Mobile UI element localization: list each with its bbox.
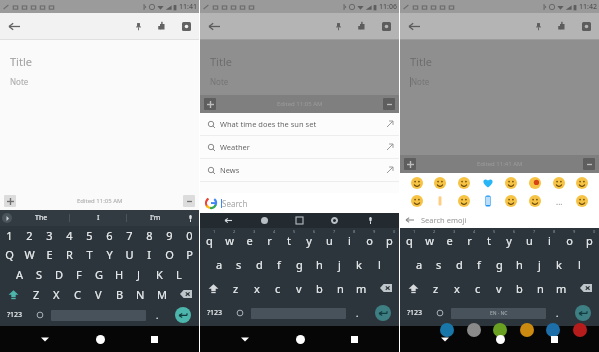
button[interactable]: Emoji — [457, 194, 471, 208]
button[interactable]: Emoji — [433, 194, 447, 208]
button[interactable]: 7 — [519, 228, 539, 252]
button[interactable]: 5 — [479, 228, 499, 252]
button[interactable]: x — [446, 276, 467, 300]
button[interactable]: Enter — [167, 304, 199, 326]
button[interactable]: Back — [436, 330, 454, 348]
button[interactable]: B — [109, 284, 130, 304]
button[interactable]: l — [369, 252, 389, 276]
button[interactable]: 9 — [359, 228, 379, 252]
button[interactable]: Back — [5, 17, 23, 35]
button[interactable]: Archive — [177, 17, 195, 35]
button[interactable]: Emoji — [410, 194, 424, 208]
button[interactable]: z — [426, 276, 446, 300]
button[interactable]: Recents — [545, 330, 563, 348]
button[interactable]: 8 — [539, 228, 559, 252]
button[interactable]: 3 — [239, 228, 259, 252]
button[interactable]: 3 — [39, 226, 59, 244]
button[interactable]: 8 — [339, 228, 359, 252]
button[interactable]: More options — [583, 158, 595, 170]
button[interactable]: 4 — [459, 228, 479, 252]
button[interactable]: D — [49, 264, 69, 284]
button[interactable]: j — [329, 252, 349, 276]
button[interactable]: g — [289, 252, 309, 276]
button[interactable]: 6 — [499, 228, 519, 252]
button[interactable]: 1 — [200, 228, 219, 252]
button[interactable]: 1 — [0, 226, 19, 244]
button[interactable]: Back — [236, 330, 254, 348]
button[interactable]: Q — [0, 244, 19, 264]
button[interactable]: b — [509, 276, 530, 300]
button[interactable]: Emoji — [528, 194, 542, 208]
button[interactable]: Emoji — [504, 194, 518, 208]
button[interactable]: Pin — [329, 17, 347, 35]
button[interactable]: Settings — [328, 214, 341, 227]
button[interactable]: 9 — [159, 226, 179, 244]
button[interactable]: Back — [405, 17, 423, 35]
button[interactable]: Emoji category — [440, 323, 454, 337]
button[interactable]: L — [169, 264, 189, 284]
button[interactable]: 4 — [59, 226, 79, 244]
button[interactable]: More options — [383, 98, 395, 110]
button[interactable]: 8 — [139, 226, 159, 244]
button[interactable]: 0 — [379, 228, 399, 252]
button[interactable]: a — [410, 252, 429, 276]
button[interactable]: I — [139, 244, 159, 264]
button[interactable]: j — [529, 252, 549, 276]
button[interactable]: Voice input — [184, 212, 196, 224]
button[interactable]: Weather — [200, 136, 399, 158]
button[interactable]: . — [348, 300, 367, 326]
button[interactable]: Search emoji — [400, 211, 599, 228]
button[interactable]: Emoji — [552, 194, 566, 208]
button[interactable]: 2 — [419, 228, 439, 252]
button[interactable]: Home — [291, 330, 309, 348]
button[interactable]: H — [109, 264, 129, 284]
button[interactable]: Stickers — [293, 214, 306, 227]
button[interactable]: K — [149, 264, 169, 284]
button[interactable]: Archive — [377, 17, 395, 35]
button[interactable]: Emoji category — [520, 323, 534, 337]
button[interactable]: Pin — [529, 17, 547, 35]
button[interactable]: Emoji — [575, 176, 589, 190]
button[interactable]: h — [309, 252, 329, 276]
button[interactable]: A — [10, 264, 29, 284]
button[interactable]: ?123 — [400, 300, 430, 326]
button[interactable]: Home — [91, 330, 109, 348]
button[interactable]: k — [549, 252, 569, 276]
button[interactable]: S — [29, 264, 49, 284]
button[interactable]: b — [309, 276, 330, 300]
button[interactable]: Shift — [400, 276, 426, 300]
button[interactable]: Enter — [367, 300, 399, 326]
button[interactable]: Home — [491, 330, 509, 348]
button[interactable]: g — [489, 252, 509, 276]
button[interactable]: Emoji category — [573, 323, 587, 337]
button[interactable]: 5 — [79, 226, 99, 244]
button[interactable]: z — [226, 276, 246, 300]
button[interactable]: Emoji — [552, 176, 566, 190]
button[interactable]: 1 — [400, 228, 419, 252]
button[interactable]: h — [509, 252, 529, 276]
button[interactable]: 5 — [279, 228, 299, 252]
button[interactable]: Emoji — [575, 194, 589, 208]
button[interactable]: W — [19, 244, 39, 264]
button[interactable]: 0 — [579, 228, 599, 252]
button[interactable]: Emoji — [481, 194, 495, 208]
button[interactable]: Emoji category — [467, 323, 481, 337]
button[interactable]: Expand suggestions — [2, 213, 12, 223]
button[interactable]: . — [148, 304, 167, 326]
button[interactable]: v — [488, 276, 509, 300]
button[interactable]: X — [46, 284, 67, 304]
button[interactable]: x — [246, 276, 267, 300]
button[interactable]: C — [67, 284, 88, 304]
button[interactable]: Emoji category — [546, 323, 560, 337]
button[interactable]: Back — [205, 17, 223, 35]
button[interactable]: Emoji category — [493, 323, 507, 337]
button[interactable]: k — [349, 252, 369, 276]
button[interactable]: 9 — [559, 228, 579, 252]
button[interactable]: n — [330, 276, 351, 300]
button[interactable]: V — [88, 284, 109, 304]
button[interactable]: Z — [26, 284, 46, 304]
button[interactable]: R — [59, 244, 79, 264]
button[interactable]: Back — [36, 330, 54, 348]
button[interactable]: I — [70, 210, 126, 226]
